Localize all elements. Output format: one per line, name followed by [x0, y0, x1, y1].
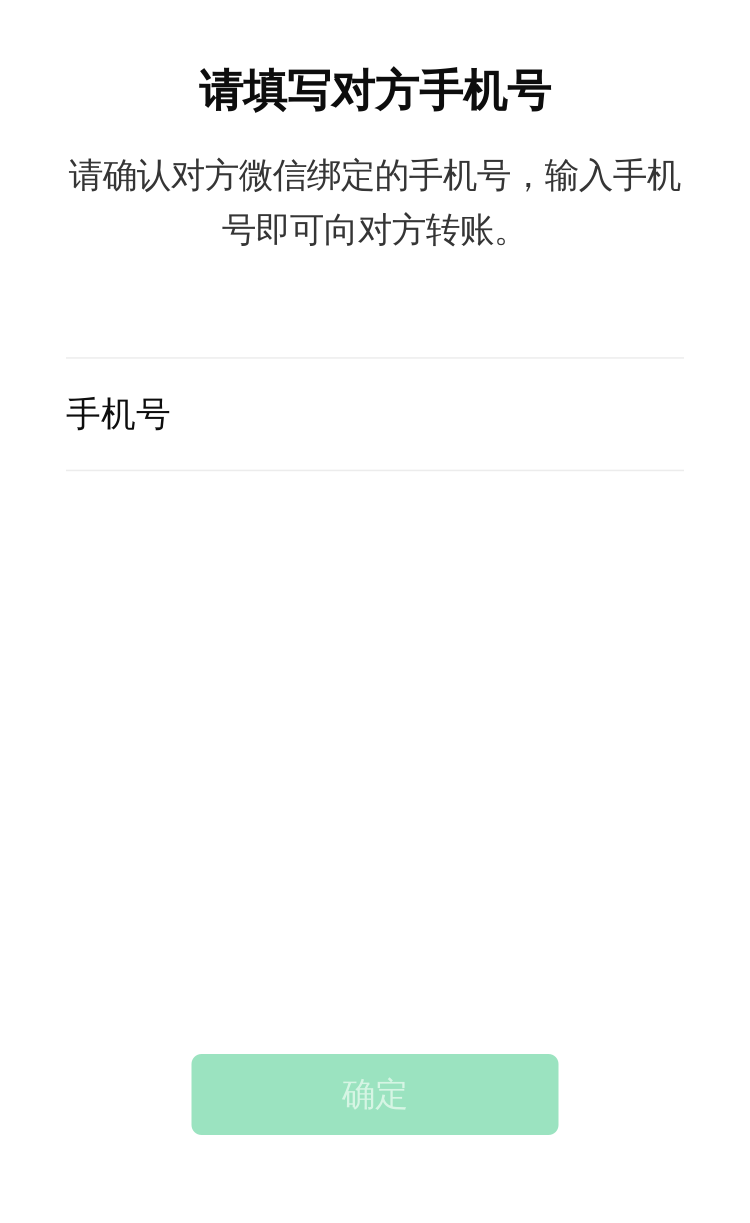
staticText: 确定	[342, 1074, 408, 1115]
staticText: 手机号	[66, 393, 171, 435]
staticText: 请填写对方手机号	[199, 64, 551, 118]
button[interactable]: 手机号	[66, 357, 684, 471]
staticText: 请确认对方微信绑定的手机号，输入手机 号即可向对方转账。	[68, 154, 681, 251]
button[interactable]: 确定	[191, 1054, 558, 1135]
